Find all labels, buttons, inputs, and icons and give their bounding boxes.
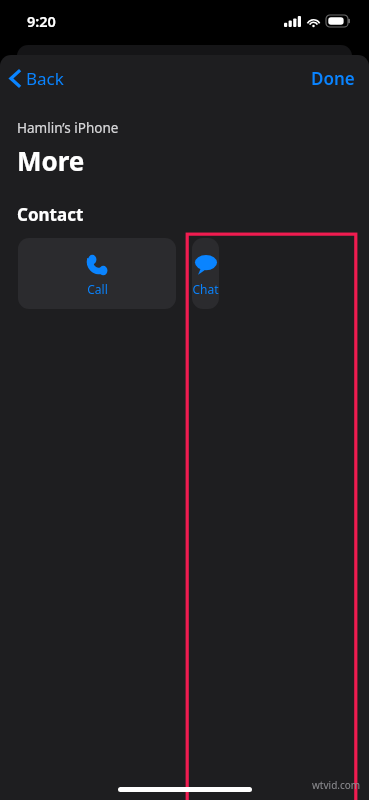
other: Chat [194,252,218,276]
staticText: Back [26,67,64,90]
staticText: Chat [192,281,219,297]
staticText: Call [87,281,108,297]
button[interactable]: Back [0,61,76,96]
staticText: 9:20 [27,11,56,31]
button[interactable]: Done [297,59,369,98]
button[interactable]: Chat [192,238,219,309]
other: Call [86,253,108,275]
button[interactable]: Call [18,238,176,309]
staticText: Done [311,67,355,90]
staticText: Contact [17,203,84,226]
staticText: More [17,143,85,178]
staticText: Hamlin’s iPhone [17,119,119,137]
staticText: wtvid.com [312,778,361,792]
